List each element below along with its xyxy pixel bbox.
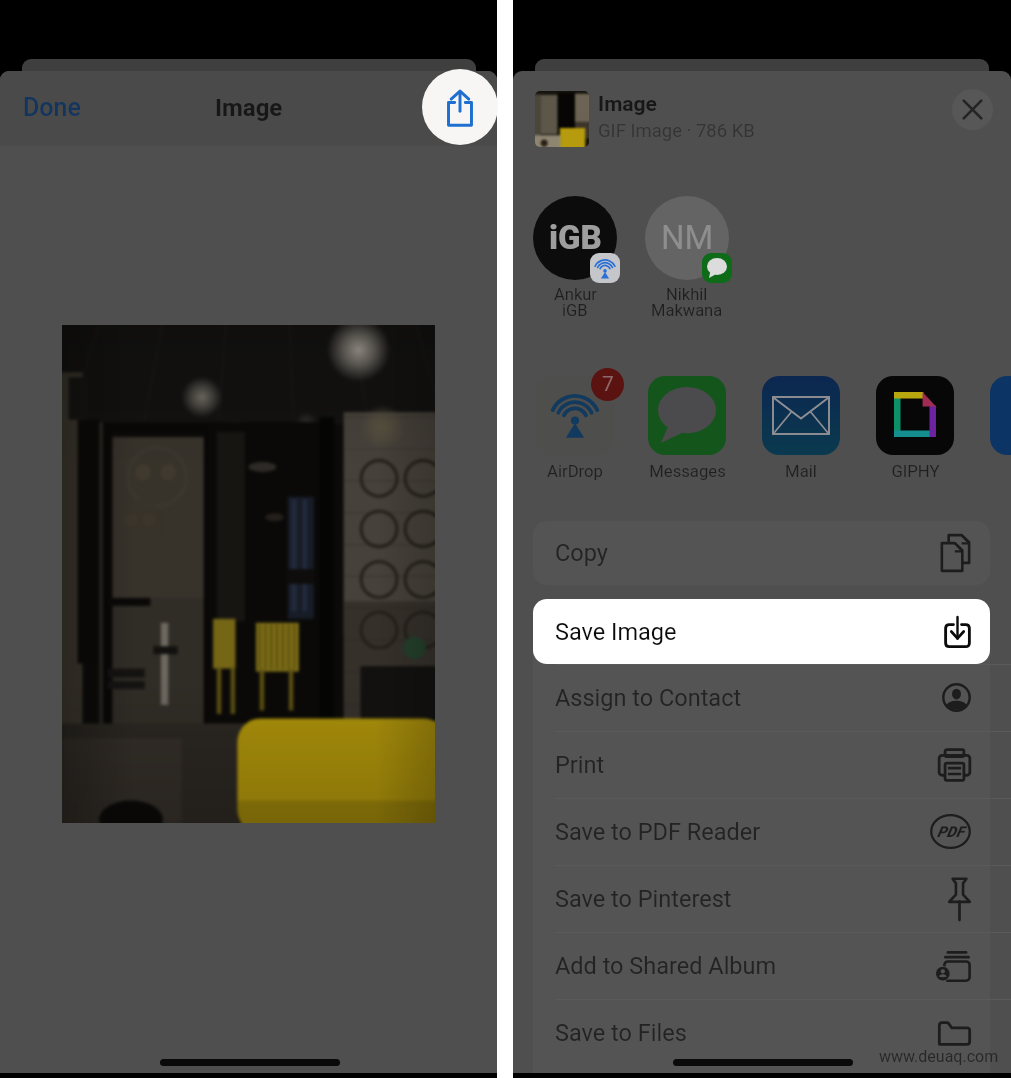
staticText: Save to Files — [555, 1019, 687, 1047]
staticText: Save to Pinterest — [555, 885, 732, 913]
staticText: Print — [555, 751, 605, 779]
staticText: Add to Shared Album — [555, 952, 777, 980]
button[interactable]: Close — [952, 89, 993, 130]
staticText: iGB — [562, 301, 588, 320]
button[interactable]: Save to PDF Reader — [533, 798, 990, 865]
staticText: Save Image — [555, 618, 677, 646]
button[interactable]: Save to Pinterest — [533, 865, 990, 932]
button[interactable]: 7 — [536, 376, 614, 455]
button[interactable] — [990, 376, 1011, 455]
button[interactable]: Add to Shared Album — [533, 932, 990, 999]
staticText: Image — [598, 92, 657, 117]
button[interactable] — [762, 376, 840, 455]
staticText: 7 — [602, 372, 614, 397]
button[interactable]: Assign to Contact — [533, 664, 990, 731]
staticText: Save to PDF Reader — [555, 818, 761, 846]
button[interactable]: Print — [533, 731, 990, 798]
staticText: iGB — [549, 218, 602, 257]
staticText: Makwana — [651, 301, 723, 320]
staticText: GIF Image · 786 KB — [598, 120, 755, 142]
button[interactable]: Copy — [533, 521, 990, 585]
button[interactable]: Done — [23, 71, 81, 146]
button[interactable]: Messages — [649, 462, 726, 482]
button[interactable]: GIPHY — [891, 462, 940, 482]
button[interactable] — [876, 376, 954, 455]
button[interactable]: iGB — [518, 176, 632, 321]
staticText: Assign to Contact — [555, 684, 742, 712]
staticText: Done — [23, 93, 81, 122]
button[interactable]: Save Image — [533, 599, 990, 664]
button[interactable]: AirDrop — [547, 462, 603, 482]
button[interactable]: Share — [422, 69, 498, 145]
staticText: PDF — [937, 823, 964, 841]
button[interactable] — [648, 376, 726, 455]
staticText: Image — [215, 94, 283, 122]
staticText: Ankur — [554, 285, 597, 304]
staticText: Nikhil — [666, 285, 708, 304]
staticText: www.deuaq.com — [879, 1047, 999, 1066]
staticText: Copy — [555, 539, 608, 567]
button[interactable]: Mail — [785, 462, 817, 482]
button[interactable]: NM — [630, 176, 744, 321]
button[interactable]: Save to Files — [533, 999, 990, 1066]
staticText: NM — [661, 218, 714, 257]
